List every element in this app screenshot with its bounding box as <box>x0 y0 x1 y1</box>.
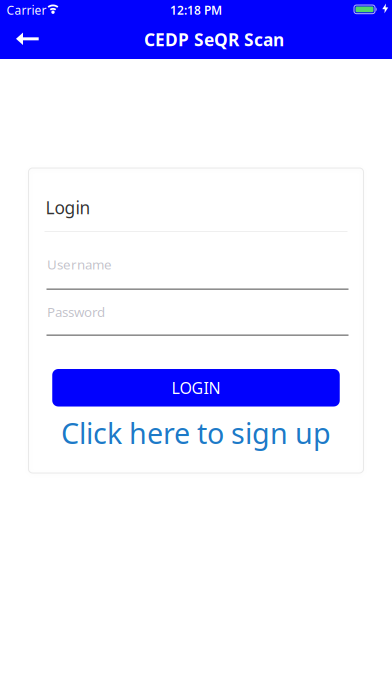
staticText: CEDP SeQR Scan <box>144 28 284 51</box>
staticText: Password <box>47 303 105 321</box>
staticText: Click here to sign up <box>61 413 331 452</box>
button[interactable]: LOGIN <box>52 369 340 406</box>
staticText: Carrier <box>6 2 46 18</box>
button[interactable]: Password <box>46 298 348 336</box>
button[interactable]: Username <box>46 252 348 290</box>
staticText: Login <box>45 196 90 219</box>
staticText: LOGIN <box>171 377 220 398</box>
button[interactable]: Back <box>0 20 51 59</box>
staticText: 12:18 PM <box>170 2 222 18</box>
button[interactable]: Click here to sign up <box>28 415 363 451</box>
staticText: Username <box>47 255 112 273</box>
